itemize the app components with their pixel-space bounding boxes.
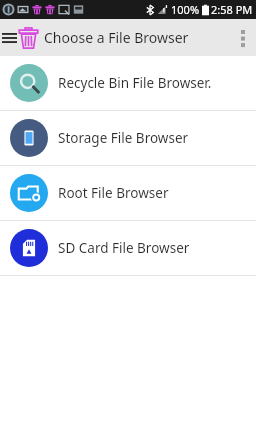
button[interactable]: Recycle Bin File Browser. xyxy=(0,56,256,110)
staticText: Storage File Browser xyxy=(58,129,189,147)
button[interactable]: More options xyxy=(230,21,256,55)
staticText: Root File Browser xyxy=(58,184,169,202)
staticText: Recycle Bin File Browser. xyxy=(58,74,212,92)
staticText: SD Card File Browser xyxy=(58,239,190,257)
staticText: Choose a File Browser xyxy=(44,28,189,47)
button[interactable]: SD Card File Browser xyxy=(0,221,256,275)
staticText: 100% xyxy=(171,2,200,17)
button[interactable]: Storage File Browser xyxy=(0,111,256,165)
button[interactable]: Open navigation drawer xyxy=(1,23,18,53)
staticText: 2:58 PM xyxy=(211,2,253,17)
button[interactable]: Root File Browser xyxy=(0,166,256,220)
